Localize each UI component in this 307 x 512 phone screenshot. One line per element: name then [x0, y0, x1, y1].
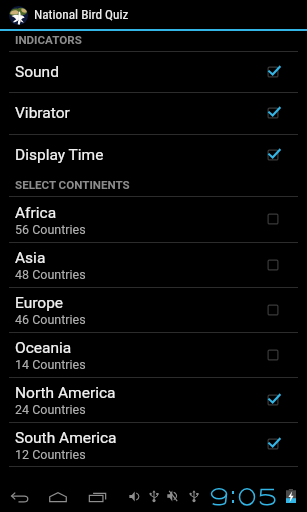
staticText: North America: [15, 384, 116, 402]
button[interactable]: Display Time: [0, 134, 307, 176]
button[interactable]: Europe: [0, 287, 307, 332]
button[interactable]: Vibrator: [0, 92, 307, 134]
staticText: Sound: [15, 63, 59, 81]
staticText: INDICATORS: [15, 33, 82, 47]
staticText: 48 Countries: [15, 267, 86, 282]
button[interactable]: Africa: [0, 196, 307, 242]
staticText: Vibrator: [15, 104, 70, 122]
staticText: 56 Countries: [15, 222, 86, 237]
staticText: SELECT CONTINENTS: [15, 178, 130, 192]
staticText: Africa: [15, 204, 57, 222]
button[interactable]: Home: [44, 485, 72, 509]
button[interactable]: Recent apps: [83, 485, 111, 509]
button[interactable]: Oceania: [0, 332, 307, 377]
button[interactable]: Sound: [0, 51, 307, 92]
staticText: 24 Countries: [15, 402, 86, 417]
button[interactable]: Back: [5, 485, 33, 509]
staticText: 46 Countries: [15, 312, 86, 327]
button[interactable]: North America: [0, 377, 307, 422]
staticText: 14 Countries: [15, 357, 86, 372]
staticText: Oceania: [15, 339, 72, 357]
staticText: National Bird Quiz: [34, 7, 129, 23]
staticText: Display Time: [15, 146, 104, 164]
staticText: Asia: [15, 249, 46, 267]
staticText: Europe: [15, 294, 64, 312]
staticText: South America: [15, 429, 117, 447]
button[interactable]: South America: [0, 422, 307, 466]
button[interactable]: Asia: [0, 242, 307, 287]
staticText: 12 Countries: [15, 447, 86, 462]
